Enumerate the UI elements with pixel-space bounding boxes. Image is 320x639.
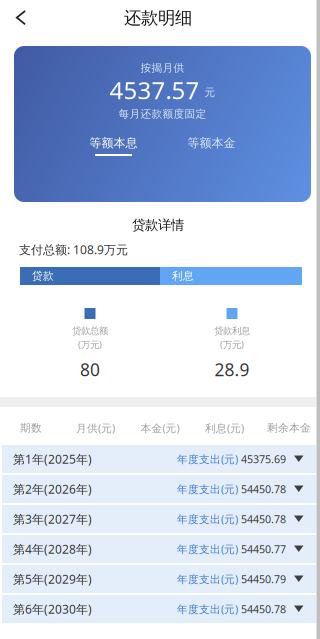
staticText: 54450.77 bbox=[238, 542, 286, 556]
staticText: 利息 bbox=[172, 269, 194, 282]
staticText: 年度支出(元) bbox=[177, 602, 238, 616]
staticText: 剩余本金 bbox=[267, 421, 311, 434]
staticText: 年度支出(元) bbox=[177, 482, 238, 496]
staticText: 年度支出(元) bbox=[177, 572, 238, 586]
staticText: 28.9 bbox=[214, 358, 249, 381]
button[interactable]: 第5年(2029年) bbox=[2, 565, 316, 593]
staticText: 按揭月供 bbox=[140, 61, 184, 74]
button[interactable]: 第3年(2027年) bbox=[2, 505, 316, 533]
staticText: 还款明细 bbox=[124, 7, 192, 29]
button[interactable]: 第6年(2030年) bbox=[2, 595, 316, 623]
staticText: 第3年(2027年) bbox=[13, 511, 92, 527]
staticText: 54450.78 bbox=[238, 602, 286, 616]
button[interactable]: 等额本金 bbox=[162, 137, 260, 156]
staticText: 54450.78 bbox=[238, 512, 286, 526]
staticText: 每月还款额度固定 bbox=[118, 107, 206, 120]
staticText: 4537.57 bbox=[109, 74, 199, 106]
staticText: 贷款详情 bbox=[132, 217, 184, 233]
staticText: 第4年(2028年) bbox=[13, 541, 92, 557]
staticText: 80 bbox=[80, 358, 100, 381]
staticText: 第5年(2029年) bbox=[13, 571, 92, 587]
staticText: 第6年(2030年) bbox=[13, 601, 92, 617]
staticText: 期数 bbox=[20, 421, 42, 434]
staticText: 贷款总额 bbox=[72, 325, 108, 337]
staticText: 利息(元) bbox=[205, 421, 244, 435]
staticText: 等额本金 bbox=[187, 136, 235, 150]
staticText: 元 bbox=[204, 86, 215, 99]
staticText: 第1年(2025年) bbox=[13, 451, 92, 467]
staticText: (万元) bbox=[78, 338, 102, 351]
staticText: 月供(元) bbox=[76, 421, 115, 435]
staticText: 年度支出(元) bbox=[177, 512, 238, 526]
button[interactable]: 等额本息 bbox=[64, 137, 162, 156]
staticText: 年度支出(元) bbox=[177, 452, 238, 466]
staticText: 等额本息 bbox=[89, 136, 137, 150]
staticText: 第2年(2026年) bbox=[13, 481, 92, 497]
staticText: 54450.79 bbox=[238, 572, 286, 586]
staticText: 54450.78 bbox=[238, 482, 286, 496]
button[interactable]: 第2年(2026年) bbox=[2, 475, 316, 503]
staticText: 贷款利息 bbox=[214, 325, 250, 337]
staticText: 45375.69 bbox=[238, 452, 286, 466]
staticText: 本金(元) bbox=[140, 421, 179, 435]
button[interactable]: Back bbox=[0, 1, 42, 35]
button[interactable]: 第4年(2028年) bbox=[2, 535, 316, 563]
staticText: 年度支出(元) bbox=[177, 542, 238, 556]
staticText: 贷款 bbox=[32, 269, 54, 282]
staticText: (万元) bbox=[220, 338, 244, 351]
staticText: 支付总额: 108.9万元 bbox=[19, 241, 128, 257]
button[interactable]: 第1年(2025年) bbox=[2, 445, 316, 473]
